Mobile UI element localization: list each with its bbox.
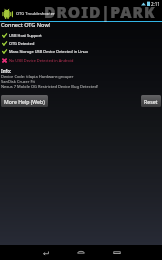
button[interactable]: Recent apps (99, 245, 135, 260)
staticText: 2:11 (151, 1, 160, 7)
staticText: Device Code: tilapia Hardware:grouper (1, 74, 74, 79)
staticText: Nexus 7 Mobile OG Restricted Device Bug … (1, 84, 98, 89)
button[interactable]: More Help (Web) (1, 95, 48, 107)
staticText: Reset (144, 98, 158, 105)
staticText: OTG Detected (9, 41, 35, 46)
staticText: No USB Device Detected in Android (9, 58, 74, 63)
staticText: Connect OTG Now! (1, 21, 51, 29)
staticText: OTG Troubleshooter (16, 11, 55, 17)
button[interactable]: Home (63, 245, 99, 260)
staticText: Info: (1, 68, 12, 74)
staticText: Mass Storage USB Device Detected in Linu… (9, 49, 89, 54)
button[interactable]: Back (27, 245, 63, 260)
staticText: SanDisk Cruzer Fit (1, 79, 35, 84)
button[interactable]: Reset (141, 95, 161, 107)
staticText: DROID|PARK (44, 1, 156, 22)
staticText: USB Host Support (9, 33, 42, 38)
staticText: More Help (Web) (4, 98, 45, 105)
